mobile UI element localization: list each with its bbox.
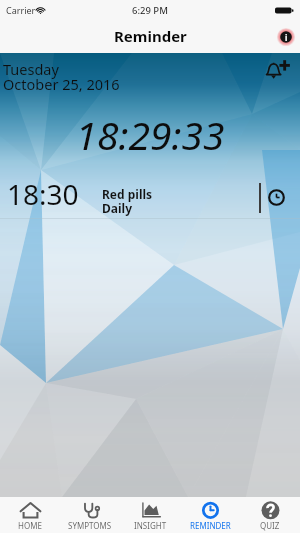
button[interactable]: 18:30	[0, 167, 300, 219]
button[interactable]: Add reminder	[264, 59, 290, 85]
staticText: Daily	[102, 200, 132, 216]
staticText: REMINDER	[190, 520, 231, 531]
staticText: Carrier	[6, 4, 36, 16]
staticText: 18:29:33	[0, 108, 300, 161]
staticText: i	[285, 32, 288, 43]
staticText: October 25, 2016	[3, 74, 120, 94]
button[interactable]: INSIGHT	[120, 497, 180, 533]
staticText: 18:30	[7, 175, 79, 213]
staticText: Tuesday	[3, 59, 59, 79]
staticText: 6:29 PM	[132, 4, 168, 17]
staticText: Reminder	[114, 26, 187, 46]
staticText: QUIZ	[260, 520, 280, 531]
staticText: HOME	[18, 520, 42, 531]
staticText: SYMPTOMS	[68, 520, 112, 531]
button[interactable]: Reminder time	[268, 189, 285, 206]
staticText: Red pills	[102, 186, 153, 202]
button[interactable]: Info	[276, 27, 296, 47]
staticText: INSIGHT	[134, 520, 167, 531]
button[interactable]: REMINDER	[180, 497, 240, 533]
button[interactable]: HOME	[0, 497, 60, 533]
button[interactable]: QUIZ	[240, 497, 300, 533]
button[interactable]: SYMPTOMS	[60, 497, 120, 533]
